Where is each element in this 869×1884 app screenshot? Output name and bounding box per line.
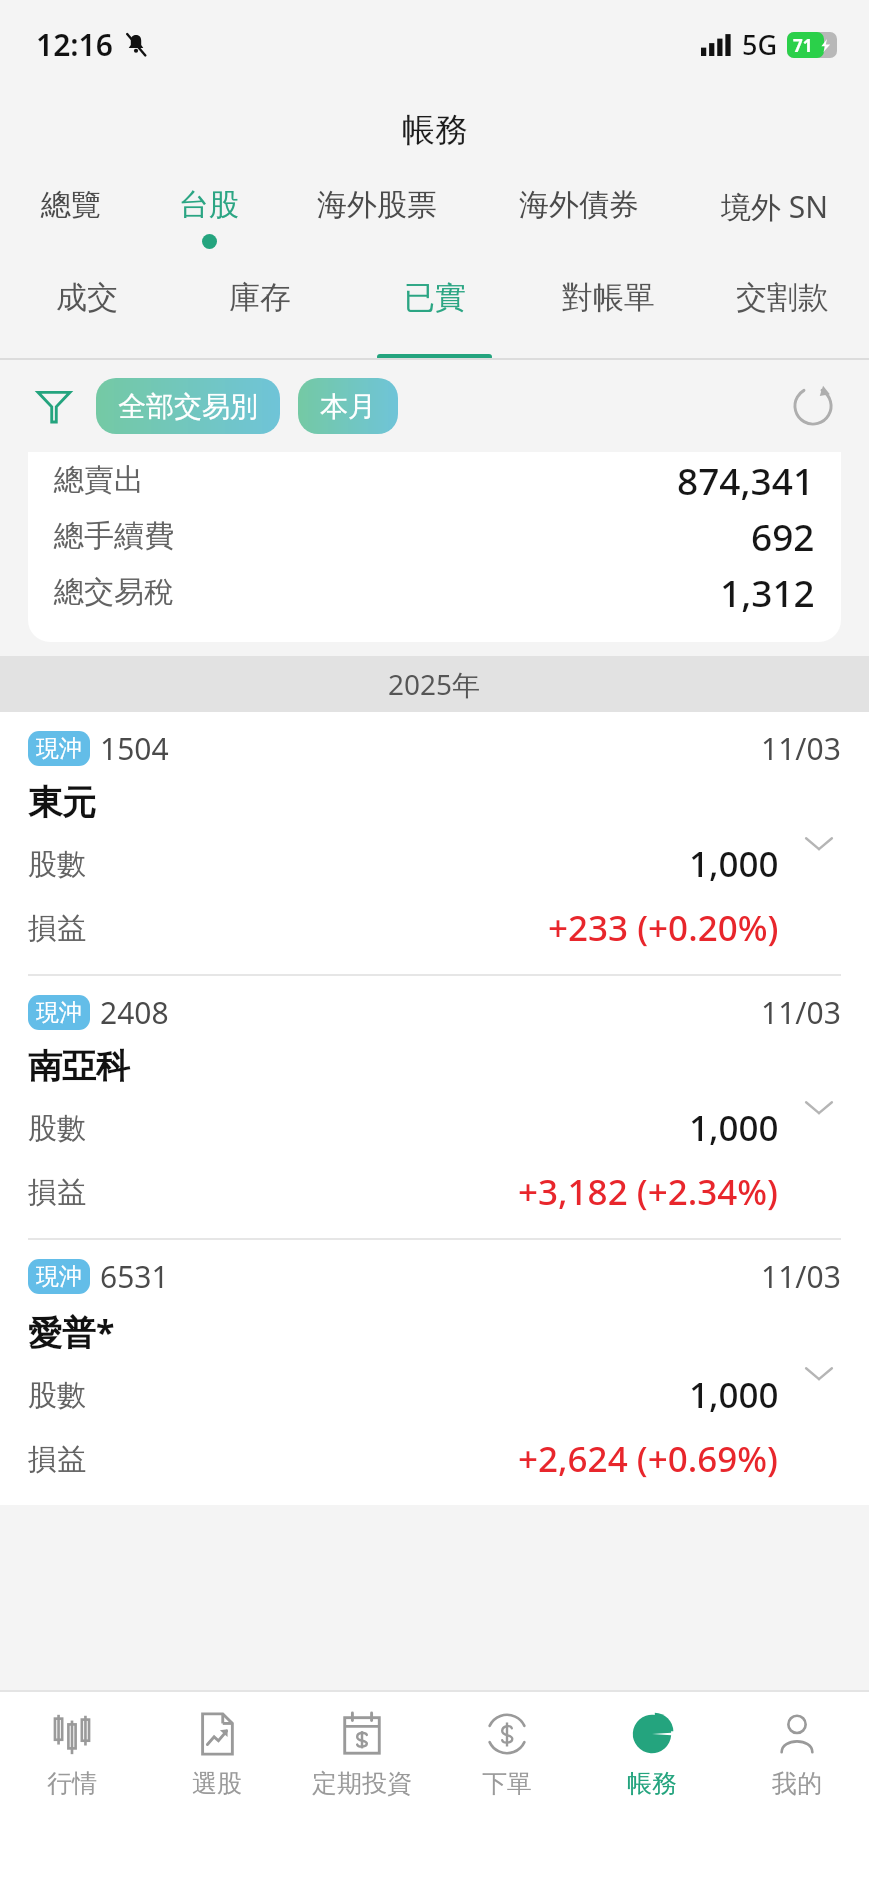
- staticText: 海外債券: [519, 186, 639, 224]
- staticText: 2025年: [388, 665, 481, 703]
- staticText: 692: [751, 511, 815, 561]
- staticText: +3,182 (+2.34%): [518, 1168, 779, 1216]
- button[interactable]: Expand: [795, 819, 843, 867]
- staticText: 行情: [47, 1768, 97, 1799]
- button[interactable]: 現沖: [0, 712, 869, 974]
- staticText: 對帳單: [562, 278, 655, 317]
- button[interactable]: 全部交易別: [96, 378, 280, 434]
- staticText: 台股: [179, 186, 239, 224]
- staticText: 現沖: [36, 998, 82, 1027]
- button[interactable]: 行情: [0, 1692, 144, 1822]
- staticText: 股數: [28, 1110, 86, 1147]
- staticText: 6531: [100, 1256, 169, 1297]
- button[interactable]: 下單: [434, 1692, 579, 1822]
- staticText: 股數: [28, 1377, 86, 1414]
- staticText: 東元: [28, 781, 96, 824]
- staticText: 總賣出: [54, 461, 144, 499]
- staticText: 現沖: [36, 734, 82, 763]
- staticText: 總手續費: [54, 517, 174, 555]
- button[interactable]: 交割款: [695, 264, 869, 360]
- staticText: 12:16: [36, 24, 113, 65]
- staticText: 11/03: [761, 992, 841, 1033]
- staticText: 海外股票: [317, 186, 437, 224]
- staticText: 庫存: [229, 278, 291, 317]
- staticText: 本月: [320, 389, 376, 424]
- button[interactable]: 對帳單: [521, 264, 695, 360]
- button[interactable]: 我的: [724, 1692, 869, 1822]
- staticText: 11/03: [761, 728, 841, 769]
- button[interactable]: Expand: [795, 1349, 843, 1397]
- button[interactable]: 帳務: [579, 1692, 724, 1822]
- button[interactable]: Filter: [28, 380, 80, 432]
- button[interactable]: 成交: [0, 264, 173, 360]
- staticText: 11/03: [761, 1256, 841, 1297]
- staticText: 成交: [56, 278, 118, 317]
- staticText: 股數: [28, 846, 86, 883]
- button[interactable]: 現沖: [0, 976, 869, 1238]
- button[interactable]: 海外股票: [276, 172, 478, 264]
- staticText: 下單: [482, 1768, 532, 1799]
- staticText: 已實: [404, 278, 466, 317]
- staticText: 境外 SN: [721, 186, 829, 227]
- button[interactable]: 選股: [144, 1692, 289, 1822]
- staticText: 南亞科: [28, 1045, 130, 1088]
- button[interactable]: 海外債券: [478, 172, 680, 264]
- staticText: 損益: [28, 910, 86, 947]
- staticText: 損益: [28, 1441, 86, 1478]
- button[interactable]: 定期投資: [289, 1692, 434, 1822]
- staticText: +233 (+0.20%): [548, 904, 779, 952]
- staticText: 選股: [192, 1768, 242, 1799]
- button[interactable]: 境外 SN: [680, 172, 869, 264]
- button[interactable]: Refresh: [785, 378, 841, 434]
- button[interactable]: 總覽: [0, 172, 141, 264]
- button[interactable]: 庫存: [173, 264, 347, 360]
- staticText: 帳務: [402, 109, 468, 151]
- staticText: 1,000: [689, 1104, 779, 1152]
- button[interactable]: 台股: [141, 172, 276, 264]
- button[interactable]: Expand: [795, 1083, 843, 1131]
- staticText: 71: [793, 34, 813, 57]
- staticText: +2,624 (+0.69%): [518, 1435, 779, 1483]
- staticText: 總交易稅: [54, 573, 174, 611]
- staticText: 1504: [100, 728, 169, 769]
- staticText: 交割款: [736, 278, 829, 317]
- staticText: 帳務: [627, 1768, 677, 1799]
- staticText: 1,312: [720, 567, 815, 617]
- button[interactable]: 現沖: [0, 1240, 869, 1505]
- staticText: 1,000: [689, 1371, 779, 1419]
- staticText: 愛普*: [28, 1309, 115, 1355]
- staticText: 1,000: [689, 840, 779, 888]
- button[interactable]: 本月: [298, 378, 398, 434]
- staticText: 總覽: [41, 186, 101, 224]
- staticText: 5G: [742, 26, 778, 63]
- staticText: 損益: [28, 1174, 86, 1211]
- staticText: 現沖: [36, 1262, 82, 1291]
- staticText: 2408: [100, 992, 169, 1033]
- staticText: 定期投資: [312, 1768, 412, 1799]
- staticText: 我的: [772, 1768, 822, 1799]
- staticText: 全部交易別: [118, 389, 258, 424]
- staticText: 874,341: [677, 455, 815, 505]
- button[interactable]: 已實: [347, 264, 521, 360]
